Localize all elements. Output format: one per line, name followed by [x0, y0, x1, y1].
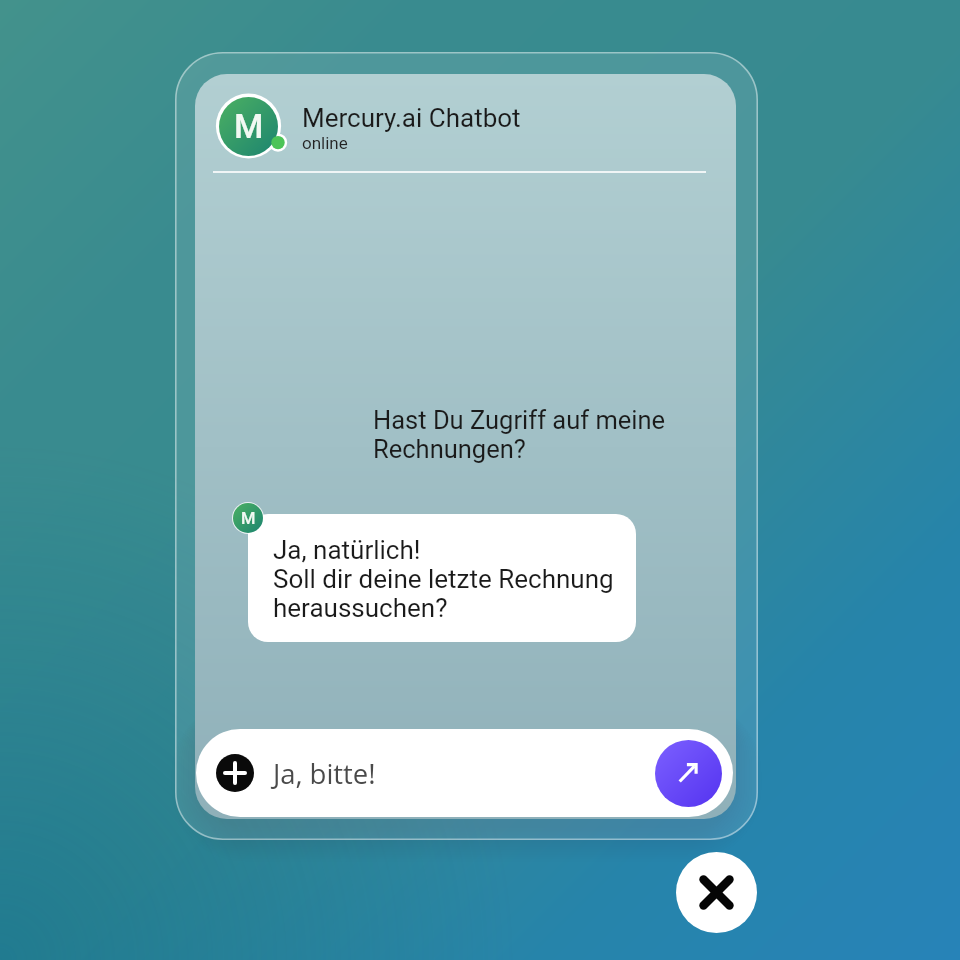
staticText: Ja, natürlich! Soll dir deine letzte Rec…	[273, 535, 614, 623]
button[interactable]: Close	[676, 852, 757, 933]
staticText: Hast Du Zugriff auf meine Rechnungen?	[373, 405, 666, 465]
staticText: M	[234, 107, 264, 146]
staticText: M	[241, 509, 256, 528]
button[interactable]: Send	[655, 740, 722, 807]
staticText: online	[302, 133, 348, 153]
staticText: Mercury.ai Chatbot	[302, 103, 521, 133]
staticText: Ja, bitte!	[273, 755, 376, 792]
button[interactable]: M	[213, 91, 521, 167]
button[interactable]: Add attachment	[216, 754, 254, 792]
